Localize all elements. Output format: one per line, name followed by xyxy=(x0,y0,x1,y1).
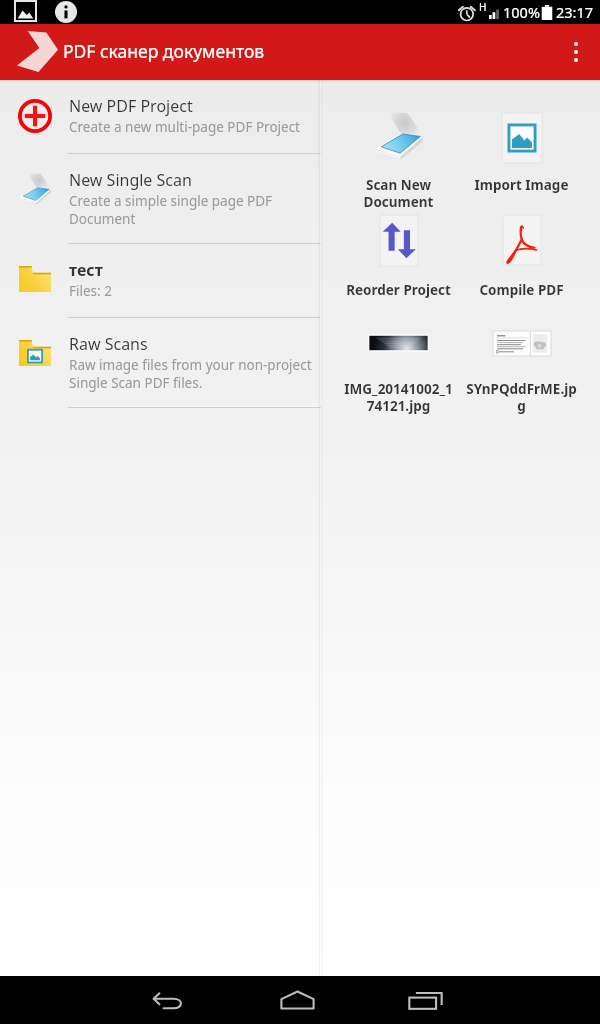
button[interactable]: Back xyxy=(141,976,197,1024)
button[interactable]: Reorder Project xyxy=(337,215,460,318)
staticText: New PDF Project xyxy=(69,95,193,117)
button[interactable]: New Single Scan xyxy=(0,154,321,243)
button[interactable]: Import Image xyxy=(460,80,583,183)
staticText: PDF сканер документов xyxy=(63,39,265,63)
button[interactable]: Raw Scans xyxy=(0,318,321,407)
button[interactable]: тест xyxy=(0,244,321,317)
staticText: 100% xyxy=(503,2,540,22)
button[interactable]: SYnPQddFrME.jp g xyxy=(460,330,583,440)
staticText: Create a simple single page PDF Document xyxy=(69,192,273,228)
staticText: SYnPQddFrME.jp g xyxy=(460,380,583,415)
staticText: Compile PDF xyxy=(460,281,583,299)
button[interactable]: Scan New Document xyxy=(337,80,460,183)
staticText: Raw Scans xyxy=(69,333,148,355)
button[interactable]: IMG_20141002_1 74121.jpg xyxy=(337,330,460,440)
staticText: New Single Scan xyxy=(69,169,192,191)
button[interactable]: Compile PDF xyxy=(460,215,583,318)
staticText: Create a new multi-page PDF Project xyxy=(69,118,300,136)
staticText: Import Image xyxy=(460,176,583,194)
button[interactable]: Home xyxy=(269,976,325,1024)
staticText: Reorder Project xyxy=(337,281,460,299)
staticText: Files: 2 xyxy=(69,282,112,300)
staticText: H xyxy=(479,0,487,14)
button[interactable]: New PDF Project xyxy=(0,80,321,153)
staticText: 23:17 xyxy=(556,2,594,22)
button[interactable]: More options xyxy=(552,28,600,76)
button[interactable]: Recent apps xyxy=(397,976,453,1024)
staticText: Raw image files from your non-project Si… xyxy=(69,356,312,392)
staticText: Scan New Document xyxy=(337,176,460,211)
staticText: IMG_20141002_1 74121.jpg xyxy=(337,380,460,415)
staticText: тест xyxy=(69,259,103,281)
